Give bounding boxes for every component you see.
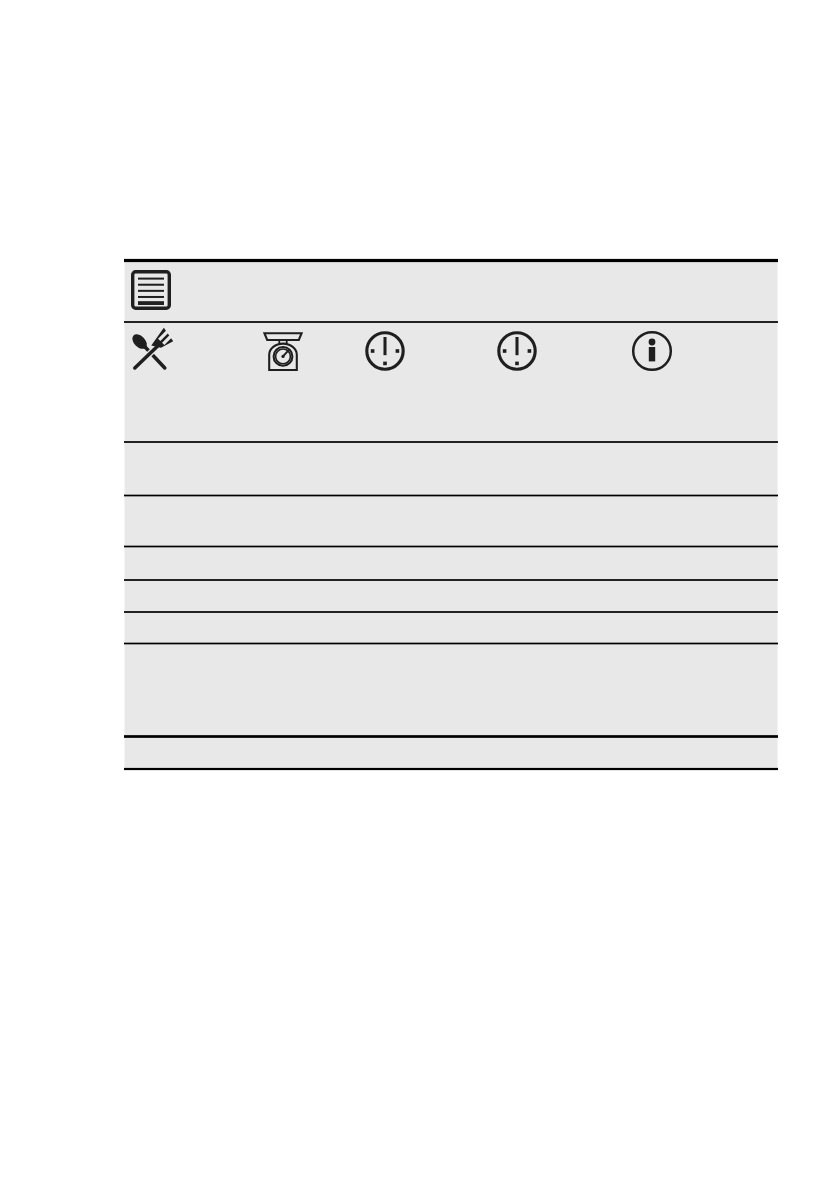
button[interactable]: Ingredients [131,331,171,371]
button[interactable]: Prep time [365,331,405,371]
button[interactable]: Information [632,331,672,371]
button[interactable]: Recipe notes [131,270,171,310]
button[interactable]: Cook time [497,331,537,371]
button[interactable]: Weight [263,331,303,371]
